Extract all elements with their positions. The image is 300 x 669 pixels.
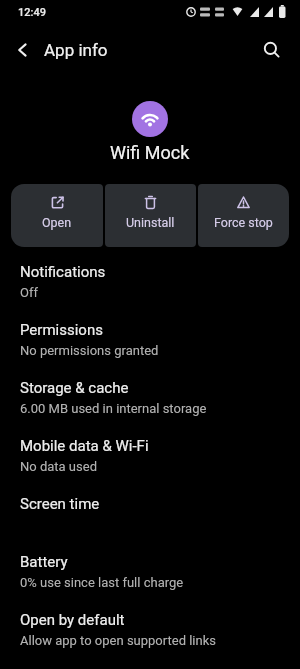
button[interactable] bbox=[248, 28, 296, 71]
button[interactable]: Permissions bbox=[0, 321, 300, 379]
staticText: Mobile data & Wi-Fi bbox=[20, 437, 149, 455]
button[interactable]: Notifications bbox=[0, 263, 300, 321]
button[interactable]: Force stop bbox=[198, 184, 289, 247]
button[interactable]: Battery bbox=[0, 553, 300, 611]
button[interactable]: Open bbox=[11, 184, 103, 247]
staticText: Storage & cache bbox=[20, 379, 129, 397]
staticText: Screen time bbox=[20, 495, 100, 513]
staticText: Battery bbox=[20, 553, 68, 571]
staticText: Force stop bbox=[214, 215, 273, 230]
button[interactable]: Open by default bbox=[0, 611, 300, 669]
staticText: Permissions bbox=[20, 321, 103, 339]
button[interactable] bbox=[0, 28, 44, 71]
button[interactable]: Uninstall bbox=[105, 184, 196, 247]
button[interactable]: Screen time bbox=[0, 495, 300, 553]
staticText: No data used bbox=[20, 459, 97, 474]
staticText: 0% use since last full charge bbox=[20, 575, 184, 590]
staticText: Notifications bbox=[20, 263, 106, 281]
staticText: App info bbox=[44, 40, 108, 60]
button[interactable]: Mobile data & Wi-Fi bbox=[0, 437, 300, 495]
staticText: Open by default bbox=[20, 611, 125, 629]
button[interactable]: Storage & cache bbox=[0, 379, 300, 437]
staticText: Off bbox=[20, 285, 38, 300]
staticText: No permissions granted bbox=[20, 343, 159, 358]
staticText: Allow app to open supported links bbox=[20, 633, 216, 648]
staticText: 12:49 bbox=[18, 6, 46, 19]
staticText: Uninstall bbox=[126, 215, 175, 230]
staticText: 6.00 MB used in internal storage bbox=[20, 401, 207, 416]
staticText: Wifi Mock bbox=[110, 142, 190, 163]
staticText: Open bbox=[42, 215, 72, 230]
